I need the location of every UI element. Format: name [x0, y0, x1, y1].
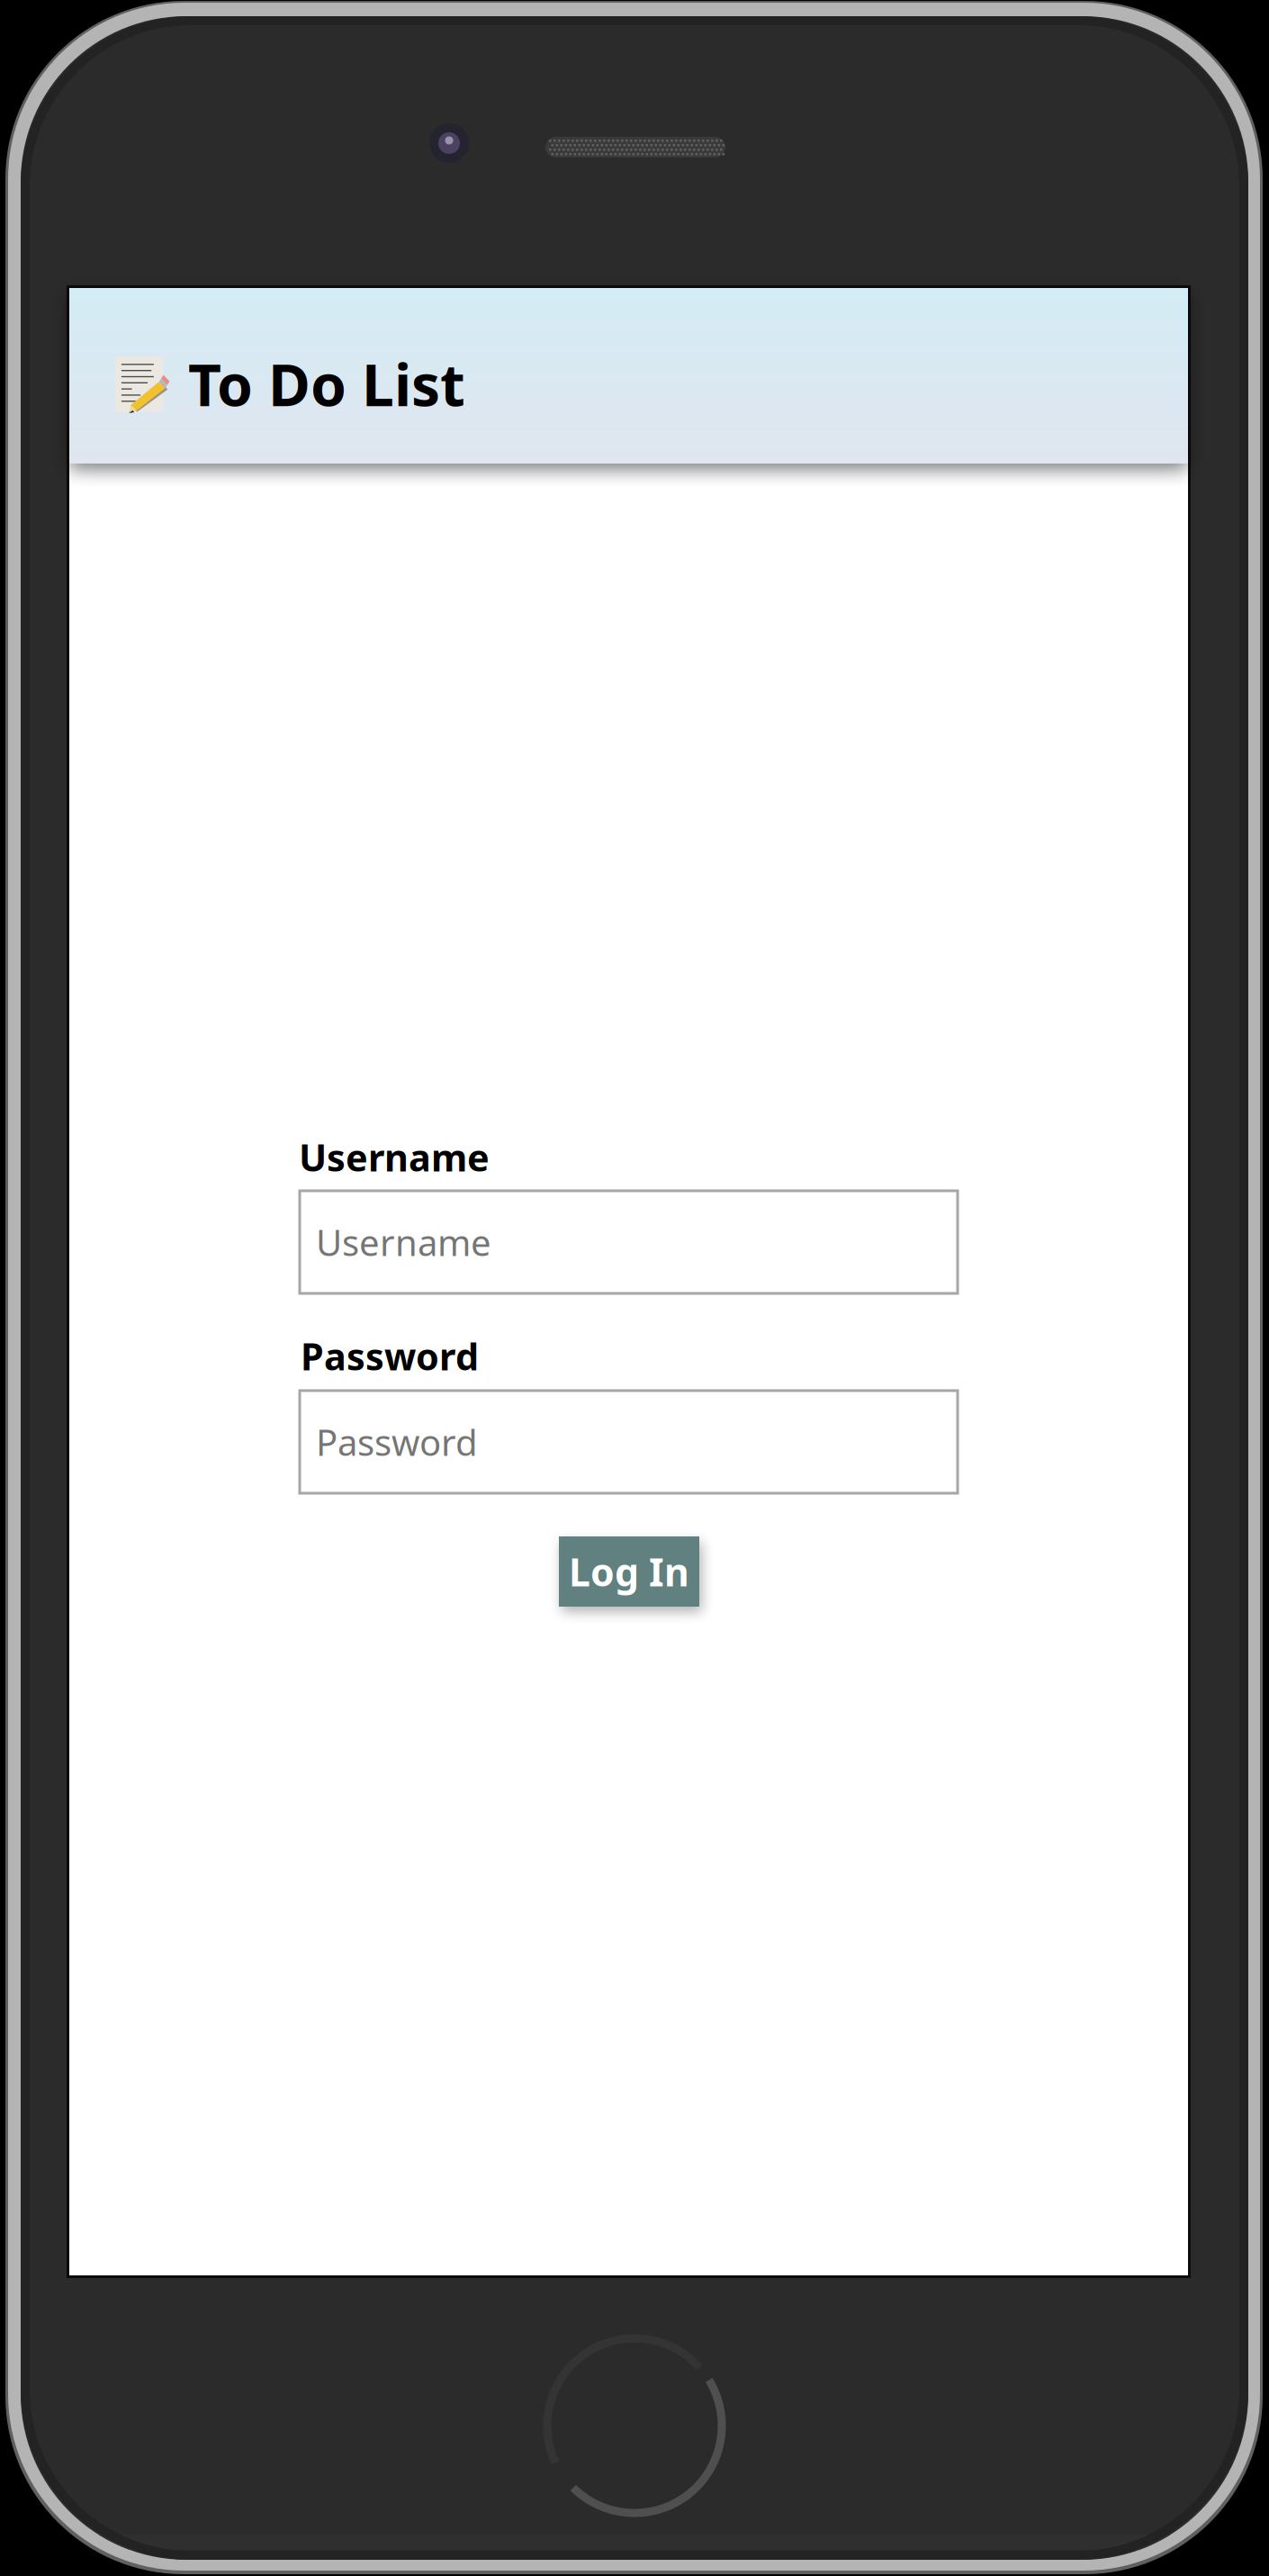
staticText: Password [316, 1418, 478, 1466]
button[interactable]: Log In [559, 1536, 699, 1607]
staticText: Log In [569, 1546, 689, 1597]
staticText: Password [301, 1331, 479, 1381]
button[interactable]: Username [300, 1191, 958, 1293]
button[interactable]: Password [300, 1391, 958, 1493]
staticText: To Do List [188, 346, 465, 422]
staticText: Username [316, 1218, 491, 1266]
staticText: Username [299, 1132, 490, 1182]
